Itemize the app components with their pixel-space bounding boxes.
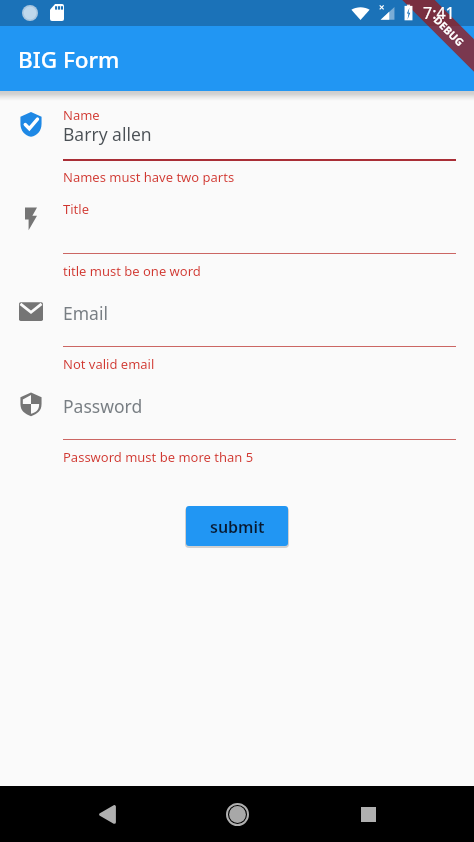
staticText: Email <box>63 301 108 325</box>
staticText: Names must have two parts <box>63 168 235 186</box>
staticText: 7:41 <box>423 2 455 24</box>
button[interactable]: Recents <box>344 790 392 838</box>
button[interactable]: Home <box>213 790 261 838</box>
button[interactable]: submit <box>186 506 288 546</box>
staticText: BIG Form <box>18 44 120 75</box>
staticText: Not valid email <box>63 355 155 373</box>
staticText: Title <box>63 200 89 218</box>
staticText: submit <box>210 516 265 538</box>
staticText: Password must be more than 5 <box>63 448 254 466</box>
staticText: Name <box>63 106 100 124</box>
staticText: Password <box>63 394 143 418</box>
button[interactable]: Email <box>0 91 474 117</box>
button[interactable]: Password <box>0 91 474 117</box>
button[interactable]: Name <box>0 91 474 117</box>
button[interactable]: Title <box>0 91 474 117</box>
button[interactable]: Back <box>83 790 131 838</box>
staticText: Barry allen <box>63 122 152 146</box>
staticText: DEBUG <box>431 13 468 50</box>
staticText: title must be one word <box>63 262 201 280</box>
